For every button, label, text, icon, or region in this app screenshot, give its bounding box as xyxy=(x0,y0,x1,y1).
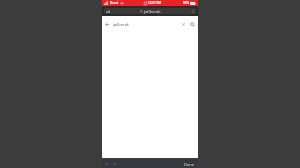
staticText: ᴀA xyxy=(106,9,111,14)
staticText: 12:51 PM xyxy=(148,1,162,5)
other: Back xyxy=(105,22,110,27)
staticText: 98% xyxy=(183,1,189,5)
staticText: jailbreak xyxy=(144,9,161,14)
button[interactable]: Search xyxy=(189,21,195,27)
button[interactable]: Next field xyxy=(112,161,118,167)
other: Reload xyxy=(191,9,195,13)
button[interactable]: Previous field xyxy=(104,161,110,167)
staticText: jailbreak xyxy=(113,22,130,27)
button[interactable]: Clear xyxy=(181,22,185,26)
button[interactable]: Back xyxy=(105,19,195,29)
button[interactable]: ᴀA xyxy=(104,8,196,14)
staticText: Done xyxy=(184,162,195,167)
button[interactable]: Done xyxy=(184,162,195,167)
staticText: Boost xyxy=(110,1,119,5)
